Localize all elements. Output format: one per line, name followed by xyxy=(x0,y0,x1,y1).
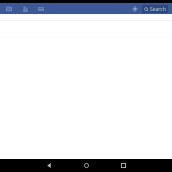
button[interactable]: Home xyxy=(77,159,95,172)
button[interactable]: Back xyxy=(40,159,58,172)
button[interactable]: Messages xyxy=(36,4,45,13)
button[interactable]: News Feed xyxy=(4,4,13,13)
button[interactable]: Add post xyxy=(130,4,139,13)
button[interactable]: Recent apps xyxy=(114,159,132,172)
button[interactable]: Search xyxy=(144,5,166,13)
staticText: Search xyxy=(150,6,166,13)
button[interactable]: Friend requests xyxy=(20,4,29,13)
